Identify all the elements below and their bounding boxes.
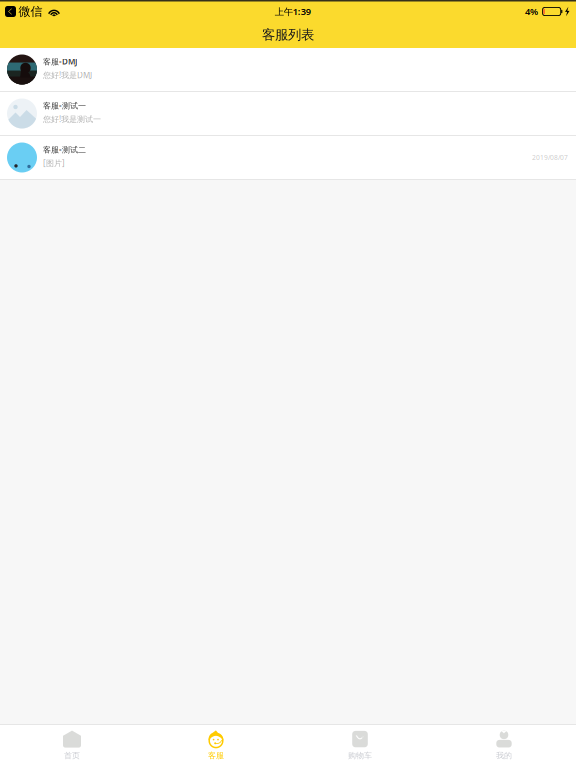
staticText: 客服 <box>208 751 224 760</box>
staticText: 客服-DMJ <box>43 56 77 67</box>
staticText: 购物车 <box>348 751 372 760</box>
staticText: 您好!我是DMJ <box>43 70 92 80</box>
button[interactable]: 客服-测试一 <box>0 92 576 136</box>
button[interactable]: 客服-测试二 <box>0 136 576 180</box>
staticText: [图片] <box>43 158 65 168</box>
staticText: 客服-测试二 <box>43 144 86 155</box>
button[interactable]: 首页 <box>0 725 144 768</box>
button[interactable]: 购物车 <box>288 725 432 768</box>
staticText: 上午1:39 <box>275 5 311 18</box>
button[interactable]: 客服-DMJ <box>0 48 576 92</box>
staticText: 我的 <box>496 751 512 760</box>
staticText: 微信 <box>18 4 42 19</box>
staticText: 客服-测试一 <box>43 100 86 111</box>
button[interactable]: 我的 <box>432 725 576 768</box>
staticText: 客服列表 <box>262 27 314 43</box>
staticText: 4% <box>525 5 538 18</box>
staticText: 首页 <box>64 751 80 760</box>
staticText: 您好!我是测试一 <box>43 114 101 124</box>
button[interactable]: Back to WeChat <box>5 4 42 19</box>
staticText: 2019/08/07 <box>532 153 568 162</box>
button[interactable]: 客服 <box>144 725 288 768</box>
